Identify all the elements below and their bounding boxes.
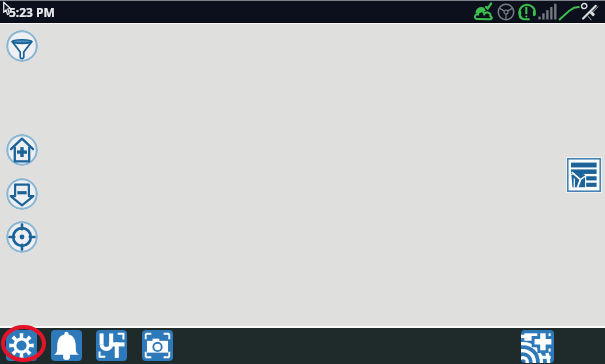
button[interactable]: Settings xyxy=(6,330,37,361)
button[interactable]: Zoom out xyxy=(6,178,38,210)
button[interactable]: Camera xyxy=(142,330,173,361)
button[interactable]: My location xyxy=(6,221,38,253)
button[interactable]: Alerts xyxy=(51,330,82,361)
button[interactable]: Scan UT xyxy=(96,330,127,361)
button[interactable]: Add map layer xyxy=(521,330,554,363)
button[interactable]: Filter xyxy=(6,30,38,62)
staticText: 5:23 PM xyxy=(9,4,55,20)
button[interactable]: Map legend xyxy=(566,157,602,193)
button[interactable]: Zoom to home xyxy=(6,134,38,166)
